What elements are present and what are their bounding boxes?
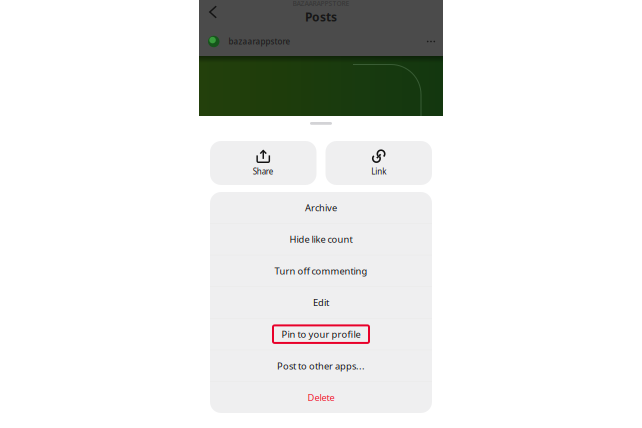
button[interactable]: Link <box>325 141 432 185</box>
staticText: Archive <box>305 201 337 214</box>
staticText: bazaarappstore <box>228 36 290 47</box>
button[interactable]: Turn off commenting <box>210 255 432 286</box>
staticText: Share <box>253 166 274 177</box>
button[interactable]: Archive <box>210 192 432 223</box>
staticText: Edit <box>313 296 329 309</box>
button[interactable]: Delete <box>210 382 432 413</box>
staticText: Link <box>371 166 386 177</box>
button[interactable]: Hide like count <box>210 224 432 255</box>
staticText: Posts <box>305 9 337 25</box>
button[interactable]: More options <box>424 34 438 48</box>
button[interactable]: Back <box>204 2 226 24</box>
button[interactable]: bazaarappstore <box>219 36 290 47</box>
button[interactable]: Edit <box>210 287 432 318</box>
staticText: Turn off commenting <box>274 265 367 277</box>
staticText: Hide like count <box>289 233 352 245</box>
staticText: Delete <box>307 391 334 404</box>
staticText: Pin to your profile <box>281 328 360 340</box>
button[interactable]: Pin to your profile <box>210 319 432 350</box>
button[interactable]: Share <box>210 141 316 185</box>
staticText: BAZAARAPPSTORE <box>292 0 349 8</box>
staticText: Post to other apps... <box>277 360 365 372</box>
button[interactable]: Profile picture <box>208 36 219 47</box>
button[interactable]: Post to other apps... <box>210 350 432 381</box>
